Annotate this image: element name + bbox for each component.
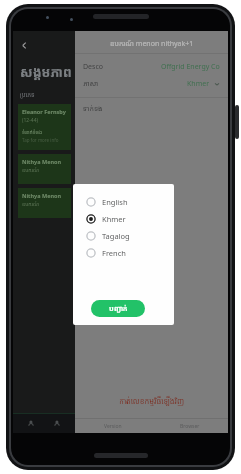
button[interactable]: Desco: [83, 62, 220, 72]
staticText: French: [102, 248, 126, 258]
staticText: ភាសា: [83, 79, 98, 89]
staticText: Nithya Menon: [22, 192, 62, 199]
button[interactable]: English: [86, 193, 166, 210]
staticText: Browser: [180, 423, 200, 430]
staticText: Eleanor Fernsby: [22, 108, 66, 115]
staticText: Tap for more info: [22, 137, 59, 143]
staticText: English: [102, 197, 128, 207]
staticText: Khmer: [102, 214, 126, 224]
staticText: ទាក់ទង: [83, 104, 103, 114]
button[interactable]: Settings: [50, 416, 64, 430]
staticText: កាត់លេខកម្មវិធីឡើងវិញ: [119, 396, 185, 406]
staticText: ប្រភេទ: [20, 91, 35, 99]
button[interactable]: Tagalog: [86, 227, 166, 244]
staticText: Offgrid Energy Co: [161, 62, 220, 72]
button[interactable]: ភាសា: [83, 79, 220, 89]
staticText: បញ្ជាក់: [109, 304, 128, 314]
staticText: Nithya Menon: [22, 158, 62, 165]
staticText: ទំនាក់ទំនង: [22, 129, 43, 136]
button[interactable]: People: [24, 416, 38, 430]
staticText: Version: [104, 423, 122, 430]
staticText: Tagalog: [102, 231, 130, 241]
staticText: សង្គម​ភាព: [20, 63, 72, 81]
button[interactable]: Back: [13, 35, 228, 55]
button[interactable]: បញ្ជាក់: [91, 300, 145, 317]
staticText: (12-44): [22, 117, 39, 124]
button[interactable]: Nithya Menon: [18, 154, 71, 184]
button[interactable]: Eleanor Fernsby: [18, 104, 71, 150]
staticText: ឧបករណ៍ menon nithyak+1: [110, 39, 194, 49]
button[interactable]: French: [86, 244, 166, 261]
staticText: Khmer: [187, 79, 210, 89]
staticText: ឧបករណ៍: [22, 201, 40, 208]
button[interactable]: Browser: [151, 423, 228, 430]
button[interactable]: Khmer: [86, 210, 166, 227]
button[interactable]: Version: [75, 423, 151, 430]
staticText: Desco: [83, 62, 104, 72]
button[interactable]: Nithya Menon: [18, 188, 71, 218]
staticText: ឧបករណ៍: [22, 167, 40, 174]
